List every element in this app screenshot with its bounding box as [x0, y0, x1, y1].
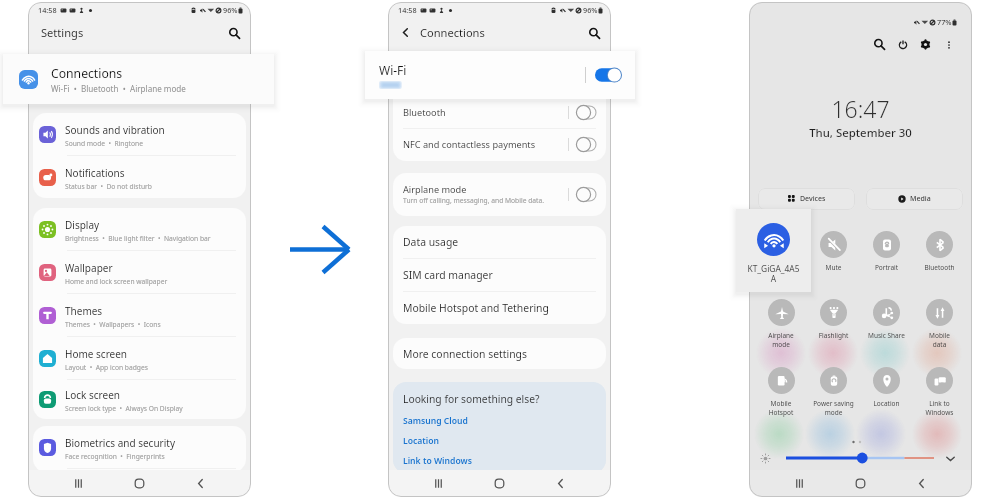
staticText: Power saving mode [807, 399, 860, 417]
button[interactable]: Toggle [576, 137, 597, 152]
staticText: 14:58 [398, 5, 417, 15]
staticText: SIM card manager [403, 268, 493, 282]
staticText: Mobile Hotspot [755, 399, 807, 417]
button[interactable]: Home [469, 470, 530, 497]
button[interactable]: Back [891, 470, 952, 497]
staticText: Music Share [860, 331, 913, 340]
button[interactable]: Toggle [576, 187, 597, 202]
button[interactable]: Samsung Cloud [403, 415, 468, 427]
button[interactable]: Connections [3, 54, 274, 104]
staticText: Wi-Fi [379, 62, 407, 78]
button[interactable]: Recents [48, 470, 109, 497]
button[interactable]: Power saving mode [807, 367, 860, 417]
button[interactable]: Themes [33, 294, 246, 336]
staticText: Connections [51, 65, 123, 82]
button[interactable]: KT_GiGA_4A5A [736, 209, 811, 292]
staticText: Flashlight [807, 331, 860, 340]
staticText: Status bar • Do not disturb [65, 182, 152, 191]
staticText: Home and lock screen wallpaper [65, 277, 168, 286]
staticText: Wallpaper [65, 261, 113, 275]
button[interactable]: Home [830, 470, 891, 497]
button[interactable]: Biometrics and security [33, 426, 246, 468]
button[interactable]: Back [530, 470, 591, 497]
staticText: Lock screen [65, 388, 121, 402]
staticText: More connection settings [403, 347, 527, 361]
staticText: Thu, September 30 [749, 125, 972, 141]
button[interactable]: Location [860, 367, 913, 408]
staticText: Mobile Hotspot and Tethering [403, 301, 549, 315]
staticText: Airplane mode [755, 331, 807, 349]
staticText: Turn off calling, messaging, and Mobile … [403, 196, 544, 205]
staticText: Brightness • Blue light filter • Navigat… [65, 234, 211, 243]
button[interactable]: Search [868, 33, 891, 56]
button[interactable]: Mobile Hotspot [755, 367, 807, 417]
staticText: Settings [41, 25, 84, 40]
button[interactable]: Recents [769, 470, 830, 497]
staticText: Connections [420, 25, 485, 40]
button[interactable]: Display [33, 208, 246, 250]
button[interactable]: Flashlight [807, 299, 860, 340]
staticText: Location [860, 399, 913, 408]
button[interactable]: Location [403, 435, 440, 447]
button[interactable]: More options [937, 33, 960, 56]
button[interactable]: Bluetooth [913, 231, 966, 272]
button[interactable]: Data usage [393, 226, 606, 258]
button[interactable]: Link to Windows [403, 455, 472, 467]
button[interactable]: Home [109, 470, 170, 497]
staticText: Wi-Fi • Bluetooth • Airplane mode [51, 83, 186, 94]
button[interactable]: Recents [408, 470, 469, 497]
button[interactable]: Search [224, 23, 244, 43]
button[interactable]: Wi-Fi [365, 51, 635, 99]
button[interactable]: Wi-Fi on [595, 66, 622, 84]
button[interactable]: Lock screen [33, 380, 246, 419]
button[interactable]: Bluetooth [393, 97, 606, 128]
button[interactable]: Home screen [33, 337, 246, 379]
staticText: Looking for something else? [403, 392, 540, 406]
button[interactable]: Wallpaper [33, 251, 246, 293]
staticText: Portrait [860, 263, 913, 272]
button[interactable]: Wi-Fi [755, 231, 807, 272]
button[interactable]: Expand [944, 452, 957, 465]
button[interactable]: Back [170, 470, 231, 497]
staticText: Themes • Wallpapers • Icons [65, 320, 161, 329]
button[interactable]: Power off [891, 33, 914, 56]
staticText: Bluetooth [403, 106, 446, 119]
staticText: 16:47 [749, 93, 972, 124]
staticText: Themes [65, 304, 103, 318]
staticText: 14:58 [38, 5, 57, 15]
staticText: Link to Windows [913, 399, 966, 417]
button[interactable]: SIM card manager [393, 259, 606, 291]
button[interactable]: Brightness [786, 451, 934, 465]
staticText: Mobile data [913, 331, 966, 349]
staticText: Screen lock type • Always On Display [65, 404, 183, 413]
button[interactable]: More connection settings [393, 338, 606, 369]
button[interactable]: Portrait [860, 231, 913, 272]
staticText: 77% [937, 17, 952, 27]
staticText: Wi-Fi [755, 263, 807, 272]
staticText: NFC and contactless payments [403, 138, 536, 151]
staticText: Sounds and vibration [65, 123, 165, 137]
button[interactable]: Link to Windows [913, 367, 966, 417]
button[interactable]: Sounds and vibration [33, 113, 246, 155]
staticText: 96% [583, 5, 598, 15]
button[interactable]: Airplane mode [755, 299, 807, 349]
button[interactable]: Media [866, 188, 963, 210]
staticText: Notifications [65, 166, 125, 180]
button[interactable]: NFC and contactless payments [393, 129, 606, 160]
button[interactable]: Notifications [33, 156, 246, 198]
button[interactable]: Settings [914, 33, 937, 56]
button[interactable]: Search [584, 23, 604, 43]
staticText: Display [65, 218, 100, 232]
button[interactable]: Devices [758, 188, 855, 210]
staticText: Devices [800, 194, 826, 204]
staticText: Sound mode • Ringtone [65, 139, 143, 148]
staticText: Biometrics and security [65, 436, 175, 450]
button[interactable]: Airplane mode [393, 173, 606, 215]
button[interactable]: Toggle [576, 105, 597, 120]
staticText: Data usage [403, 235, 459, 249]
button[interactable]: Mute [807, 231, 860, 272]
button[interactable]: Mobile Hotspot and Tethering [393, 292, 606, 324]
button[interactable]: Mobile data [913, 299, 966, 349]
button[interactable]: Back [397, 24, 414, 41]
button[interactable]: Music Share [860, 299, 913, 340]
